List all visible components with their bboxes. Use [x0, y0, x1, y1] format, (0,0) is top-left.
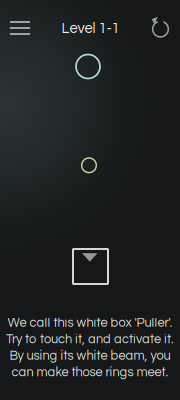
button[interactable]: Restart level: [141, 0, 180, 48]
staticText: By using its white beam, you: [9, 349, 170, 362]
button[interactable]: Menu: [0, 0, 40, 48]
staticText: We call this white box 'Puller'.: [7, 316, 172, 330]
staticText: can make those rings meet.: [11, 366, 168, 379]
staticText: Try to touch it, and activate it.: [6, 333, 174, 346]
staticText: Level 1-1: [61, 21, 119, 36]
